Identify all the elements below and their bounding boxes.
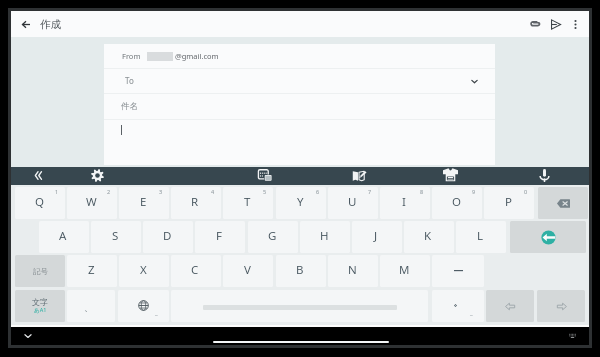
button[interactable]: E [119,187,169,219]
staticText: 7 [368,188,372,195]
button[interactable]: H [300,221,350,253]
button[interactable]: Dictionary [350,167,366,183]
button[interactable]: A [39,221,89,253]
staticText: Y [297,194,304,210]
staticText: C [191,262,199,278]
staticText: 作成 [40,18,61,31]
button[interactable]: Z [67,255,117,287]
staticText: 8 [420,188,424,195]
staticText: ー [453,264,464,278]
button[interactable]: K [404,221,454,253]
button[interactable]: Change input mode [15,290,65,322]
staticText: D [163,228,172,244]
button[interactable]: Show CC and BCC [467,74,481,88]
button[interactable]: I [380,187,430,219]
staticText: To [125,75,134,86]
button[interactable]: F [195,221,245,253]
button[interactable]: X [119,255,169,287]
staticText: Q [35,194,44,210]
button[interactable]: Y [276,187,326,219]
button[interactable]: Themes [442,167,458,183]
staticText: O [452,194,461,210]
staticText: 、 [84,302,93,313]
staticText: N [348,262,357,278]
staticText: _ [470,309,473,317]
button[interactable]: B [276,255,326,287]
staticText: 2 [107,188,111,195]
button[interactable]: 件名 [104,94,495,119]
button[interactable]: Period [432,290,484,322]
staticText: U [348,194,357,210]
button[interactable]: L [456,221,506,253]
button[interactable]: S [91,221,141,253]
button[interactable]: D [143,221,193,253]
staticText: M [399,262,410,278]
button[interactable]: Switch keyboard [257,167,273,183]
button[interactable]: T [223,187,273,219]
staticText: 6 [316,188,320,195]
button[interactable]: Cursor left [486,290,534,322]
staticText: B [296,262,304,278]
button[interactable]: Q [15,187,65,219]
staticText: K [424,228,432,244]
button[interactable]: Hide keyboard [20,328,36,344]
staticText: @gmail.com [175,51,219,61]
button[interactable]: Cursor right [537,290,585,322]
button[interactable]: Long vowel [432,255,484,287]
staticText: Z [88,262,95,278]
staticText: 件名 [121,101,138,112]
staticText: F [216,228,222,244]
staticText: H [320,228,329,244]
button[interactable]: R [171,187,221,219]
button[interactable]: Attach file [522,11,548,37]
staticText: A [59,228,67,244]
staticText: V [244,262,251,278]
button[interactable]: V [223,255,273,287]
staticText: W [86,194,97,210]
button[interactable]: O [432,187,482,219]
button[interactable]: Enter [510,221,586,253]
button[interactable]: From [104,44,495,68]
button[interactable]: M [380,255,430,287]
button[interactable]: N [328,255,378,287]
staticText: 0 [524,188,528,195]
staticText: I [402,194,406,210]
staticText: T [244,194,251,210]
staticText: 1 [55,188,59,195]
button[interactable]: Send [542,11,568,37]
staticText: 文字 [32,297,48,307]
button[interactable]: Back [13,11,39,37]
button[interactable]: W [67,187,117,219]
button[interactable]: Space [171,290,428,322]
button[interactable]: Collapse toolbar [30,167,46,183]
button[interactable]: Input settings [89,167,105,183]
staticText: 4 [211,188,215,195]
button[interactable]: Change language [118,290,169,322]
staticText: G [268,228,277,244]
staticText: R [191,194,199,210]
button[interactable]: Voice input [536,167,552,183]
staticText: 9 [472,188,476,195]
staticText: _ [155,309,158,317]
button[interactable]: U [328,187,378,219]
button[interactable] [104,120,495,165]
button[interactable]: J [352,221,402,253]
button[interactable]: Symbols [15,255,65,287]
staticText: From [122,51,141,61]
button[interactable]: Switch keyboard [564,328,580,344]
button[interactable]: Backspace [538,187,588,219]
staticText: P [505,194,512,210]
staticText: E [140,194,147,210]
button[interactable]: C [171,255,221,287]
button[interactable]: P [484,187,534,219]
staticText: 記号 [33,267,48,276]
button[interactable]: More options [562,11,588,37]
staticText: L [477,228,484,244]
button[interactable]: To [104,69,495,92]
button[interactable]: G [248,221,298,253]
staticText: J [374,228,378,244]
staticText: S [112,228,119,244]
staticText: あA1 [34,306,47,314]
staticText: X [140,262,147,278]
